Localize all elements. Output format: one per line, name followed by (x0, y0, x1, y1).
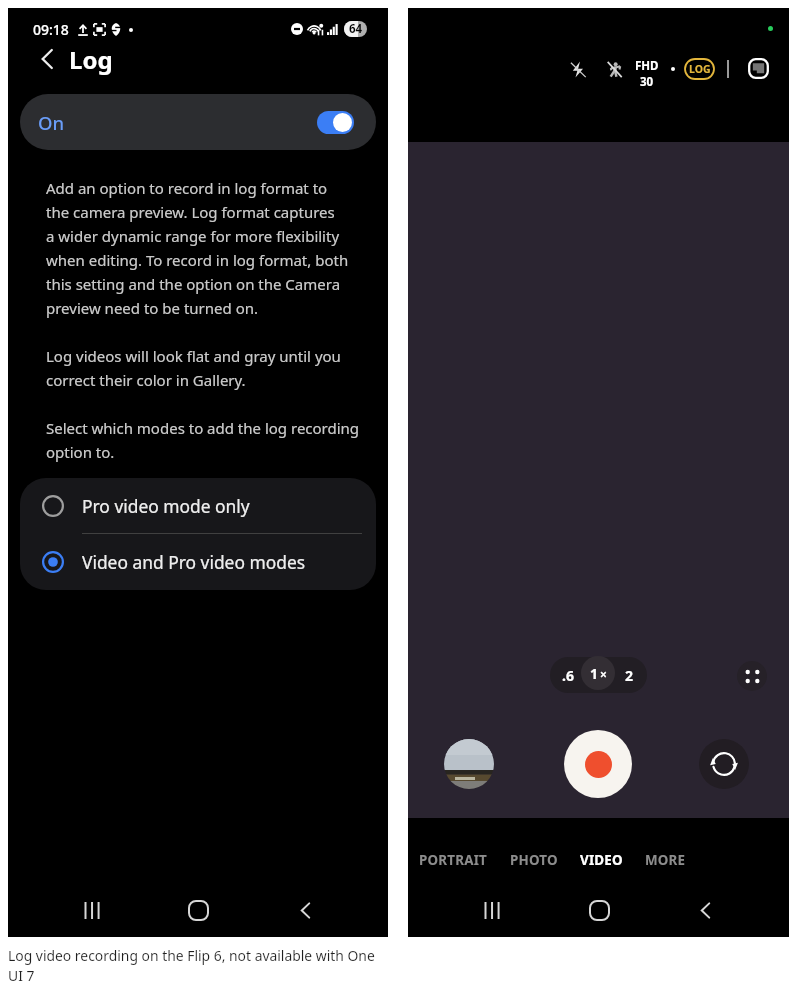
staticText: 2 (625, 666, 634, 685)
staticText: .6 (562, 666, 574, 685)
staticText: 64 (349, 21, 363, 37)
staticText: PHOTO (510, 851, 558, 869)
button[interactable]: On (20, 94, 376, 150)
staticText: 09:18 (33, 20, 69, 39)
button[interactable]: Video and Pro video modes (20, 534, 376, 589)
button[interactable]: Home (576, 887, 622, 933)
staticText: Select which modes to add the log record… (46, 415, 360, 463)
staticText: On (38, 110, 65, 135)
staticText: PORTRAIT (419, 851, 488, 869)
staticText: Log videos will look flat and gray until… (46, 343, 341, 391)
button[interactable]: 1 (581, 656, 615, 690)
staticText: Log (69, 43, 113, 76)
button[interactable]: Recents (69, 887, 115, 933)
staticText: × (600, 666, 607, 682)
button[interactable]: Back (282, 887, 328, 933)
staticText: Log video recording on the Flip 6, not a… (8, 946, 375, 986)
staticText: 30 (640, 74, 654, 90)
staticText: Add an option to record in log format to… (46, 175, 349, 319)
button[interactable]: VIDEO (580, 851, 623, 869)
button[interactable]: PORTRAIT (419, 851, 488, 869)
button[interactable]: .6 (554, 661, 582, 689)
button[interactable]: 2 (615, 661, 643, 689)
button[interactable]: LOG (685, 59, 714, 79)
button[interactable]: Switch camera (699, 739, 749, 789)
staticText: FHD (635, 58, 659, 74)
staticText: VIDEO (580, 851, 623, 869)
button[interactable]: Back (31, 43, 63, 75)
button[interactable]: Gallery (444, 739, 494, 789)
button[interactable]: Pro video mode only (20, 478, 376, 533)
button[interactable]: MORE (645, 851, 686, 869)
button[interactable]: Flash off (566, 57, 590, 81)
button[interactable]: Home (175, 887, 221, 933)
button[interactable]: Aspect ratio (748, 58, 769, 79)
button[interactable]: More options (737, 661, 767, 691)
button[interactable]: FHD (634, 58, 660, 90)
staticText: 1 (590, 664, 599, 683)
button[interactable]: Record (564, 730, 632, 798)
staticText: Pro video mode only (82, 494, 250, 518)
button[interactable]: PHOTO (510, 851, 558, 869)
staticText: MORE (645, 851, 686, 869)
staticText: Video and Pro video modes (82, 550, 306, 574)
button[interactable]: Recents (469, 887, 515, 933)
button[interactable]: Back (682, 887, 728, 933)
button[interactable]: Motion photo off (602, 57, 626, 81)
staticText: LOG (689, 62, 711, 76)
